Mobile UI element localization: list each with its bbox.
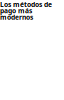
staticText: Los métodos de pago más modernos <box>0 0 52 22</box>
